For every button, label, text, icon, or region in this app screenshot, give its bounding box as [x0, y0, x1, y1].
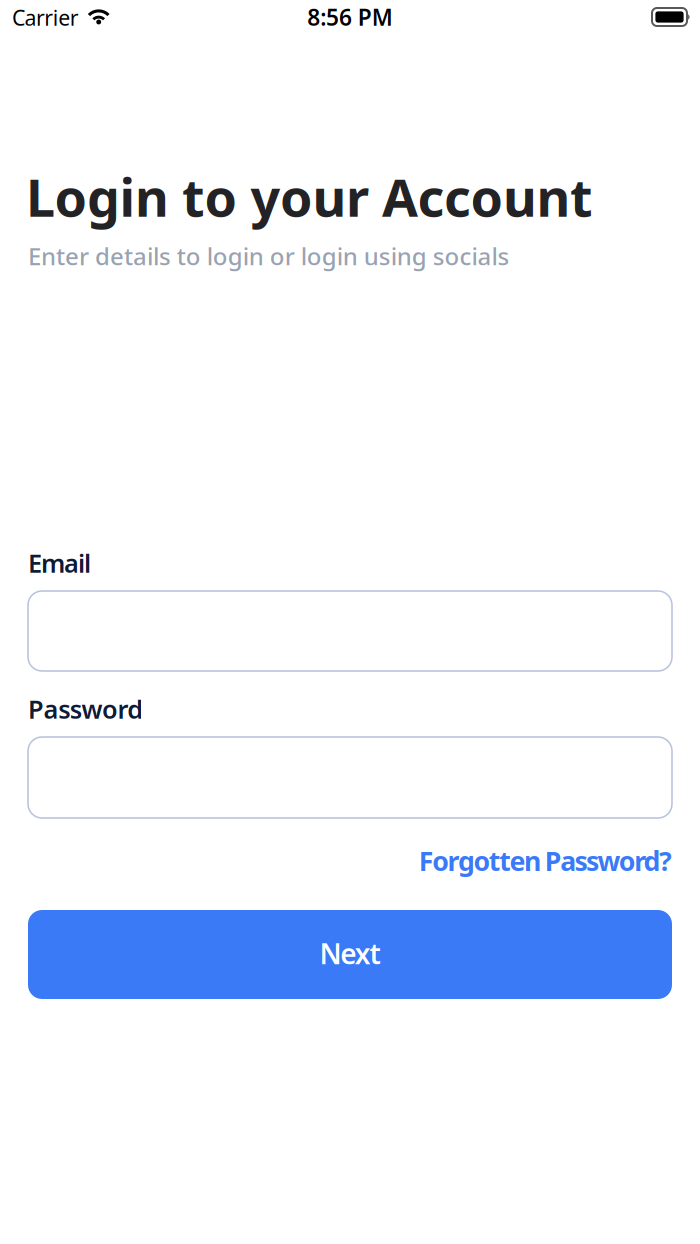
staticText: Next [319, 935, 380, 972]
staticText: 8:56 PM [307, 2, 393, 32]
staticText: Password [28, 692, 143, 726]
button[interactable] [28, 737, 672, 818]
staticText: Email [28, 546, 91, 580]
staticText: Enter details to login or login using so… [28, 240, 510, 272]
staticText: Carrier [12, 3, 79, 32]
button[interactable]: Next [28, 910, 672, 999]
staticText: Login to your Account [26, 162, 593, 231]
staticText: Forgotten Password? [419, 843, 672, 878]
button[interactable] [28, 591, 672, 671]
button[interactable]: Forgotten Password? [419, 843, 672, 878]
